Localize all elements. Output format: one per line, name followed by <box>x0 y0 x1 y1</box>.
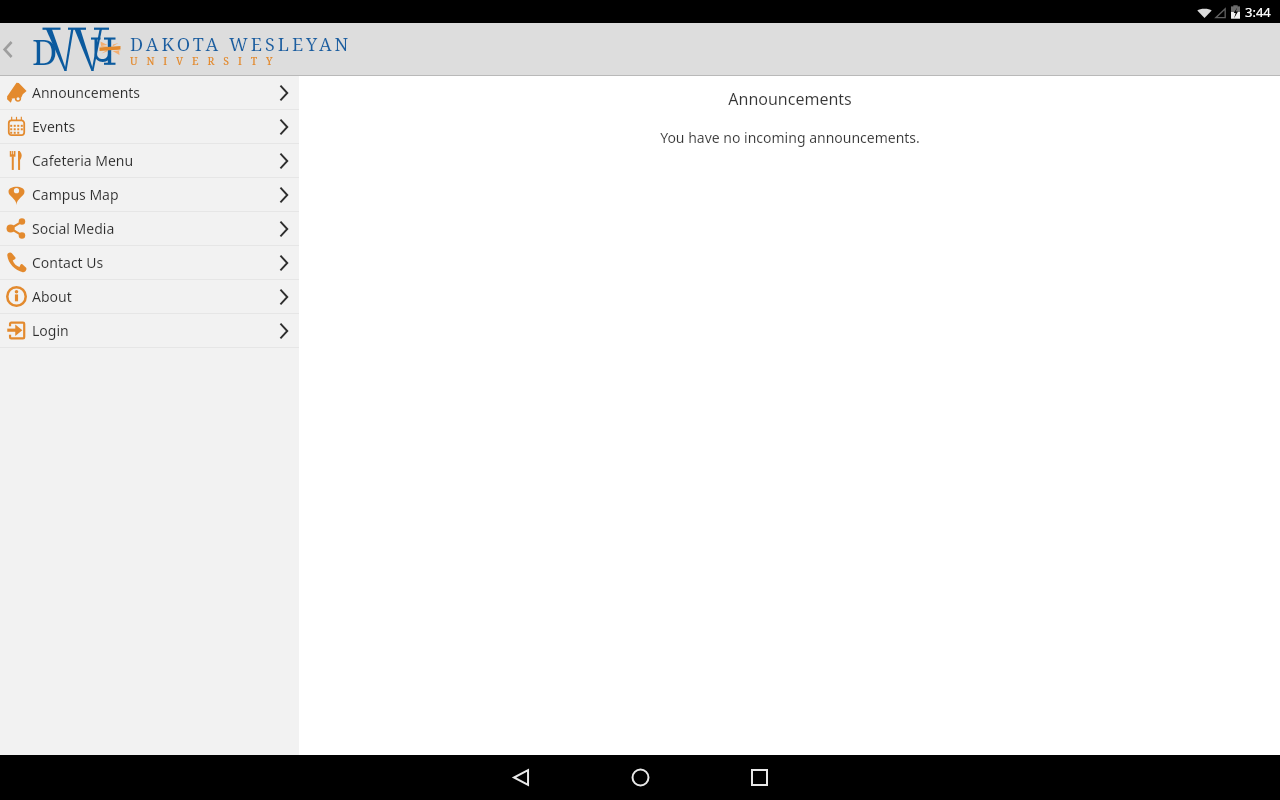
staticText: Announcements <box>32 83 141 102</box>
button[interactable]: Events <box>0 110 299 143</box>
button[interactable]: Recents <box>720 755 799 800</box>
button[interactable]: Home <box>600 755 680 800</box>
staticText: About <box>32 287 72 306</box>
button[interactable]: Cafeteria Menu <box>0 144 299 177</box>
staticText: Contact Us <box>32 253 104 272</box>
button[interactable]: Announcements <box>0 76 299 109</box>
staticText: You have no incoming announcements. <box>660 128 920 147</box>
staticText: Social Media <box>32 219 115 238</box>
button[interactable]: Back <box>0 23 15 76</box>
staticText: Campus Map <box>32 185 119 204</box>
button[interactable]: Login <box>0 314 299 347</box>
button[interactable]: Social Media <box>0 212 299 245</box>
staticText: D <box>32 28 58 76</box>
staticText: Cafeteria Menu <box>32 151 134 170</box>
button[interactable]: Contact Us <box>0 246 299 279</box>
staticText: 3:44 <box>1245 3 1271 21</box>
button[interactable]: Campus Map <box>0 178 299 211</box>
staticText: Events <box>32 117 76 136</box>
button[interactable]: About <box>0 280 299 313</box>
staticText: UNIVERSITY <box>130 54 282 68</box>
staticText: Announcements <box>728 88 852 110</box>
staticText: DAKOTA WESLEYAN <box>130 32 352 57</box>
staticText: Login <box>32 321 69 340</box>
button[interactable]: Back <box>480 755 561 800</box>
